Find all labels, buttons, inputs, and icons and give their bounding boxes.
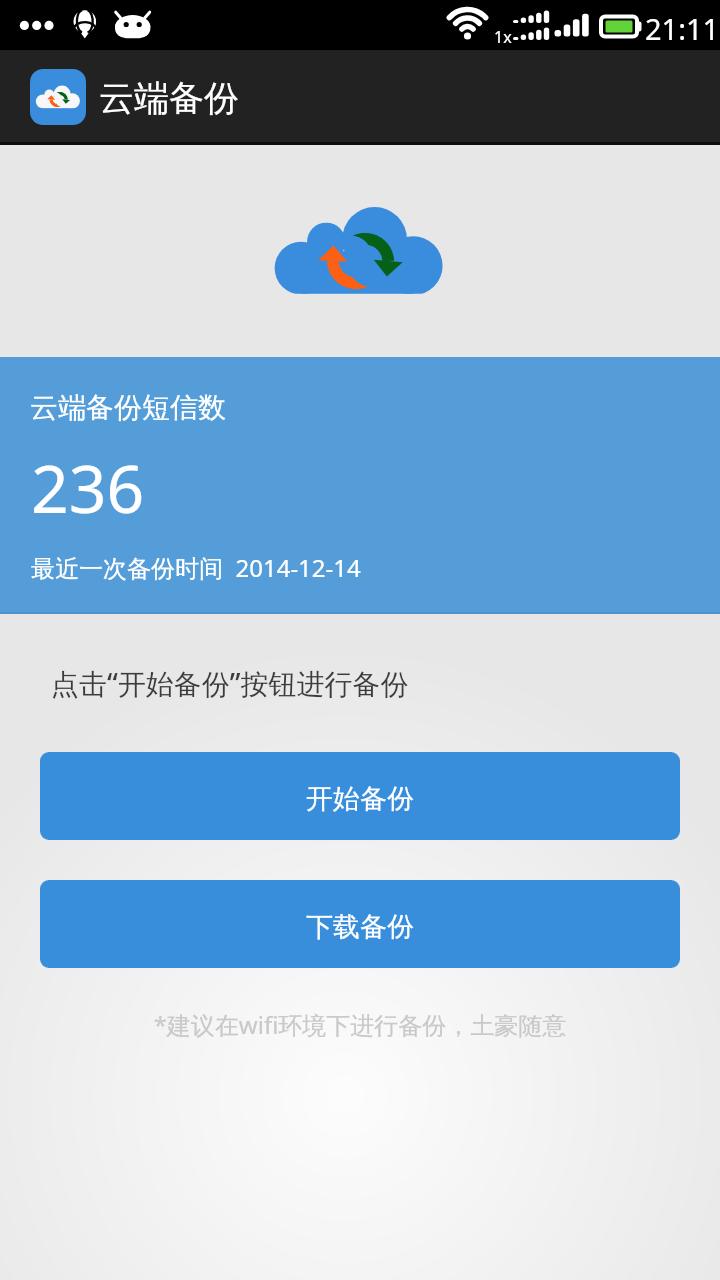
staticText: 1x <box>494 26 512 48</box>
staticText: 最近一次备份时间 2014-12-14 <box>31 551 361 584</box>
staticText: 云端备份短信数 <box>30 390 226 425</box>
button[interactable]: 开始备份 <box>40 752 680 840</box>
staticText: *建议在wifi环境下进行备份，土豪随意 <box>0 1008 720 1041</box>
button[interactable]: 下载备份 <box>40 880 680 968</box>
button[interactable]: 云端备份 app icon <box>30 69 86 125</box>
staticText: 236 <box>31 442 145 532</box>
staticText: 下载备份 <box>306 910 414 944</box>
staticText: 21:11 <box>645 9 720 48</box>
staticText: 开始备份 <box>306 782 414 816</box>
staticText: 云端备份 <box>99 76 239 120</box>
staticText: 点击“开始备份”按钮进行备份 <box>51 664 409 702</box>
